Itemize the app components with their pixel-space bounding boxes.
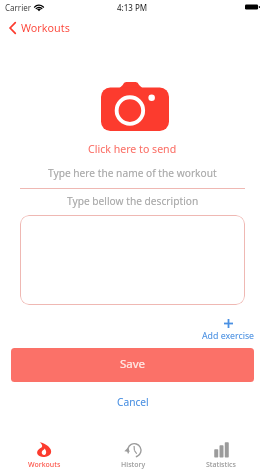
staticText: Add exercise [202,330,255,342]
button[interactable]: Save [11,348,254,382]
staticText: Cancel [117,395,149,409]
staticText: History [121,460,146,470]
button[interactable]: Type here the name of the workout [20,166,245,189]
button[interactable]: Add exercise [197,318,260,342]
button[interactable] [20,215,245,305]
staticText: Save [120,356,146,372]
staticText: Statistics [206,460,236,470]
staticText: Type bellow the description [67,194,199,208]
button[interactable]: Click here to send a photo [101,82,169,131]
staticText: Workouts [21,20,70,35]
button[interactable]: Type bellow the description [20,194,245,214]
button[interactable]: Cancel [113,391,153,413]
staticText: Type here the name of the workout [48,166,217,180]
button[interactable]: Workouts [0,436,89,471]
staticText: 4:13 PM [117,2,148,13]
staticText: Carrier [5,2,32,13]
staticText: Workouts [28,460,61,470]
staticText: Click here to send [88,142,177,156]
button[interactable]: History [89,436,177,471]
button[interactable]: Statistics [177,436,265,471]
button[interactable]: Workouts [7,18,72,37]
